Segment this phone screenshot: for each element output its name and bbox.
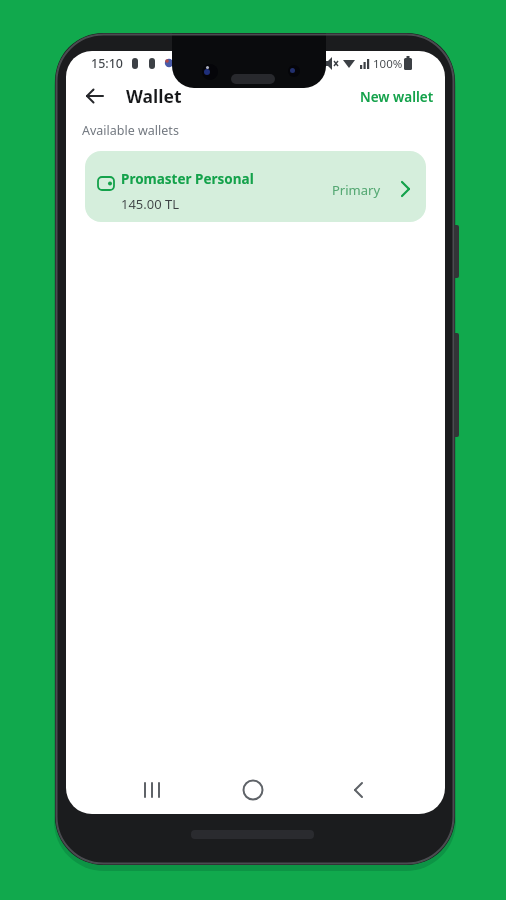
staticText: 15:10 <box>91 55 124 72</box>
staticText: New wallet <box>360 88 434 106</box>
button[interactable]: New wallet <box>360 81 440 111</box>
button[interactable] <box>132 773 172 807</box>
button[interactable] <box>233 773 273 807</box>
staticText: Wallet <box>126 84 182 108</box>
staticText: 145.00 TL <box>121 195 180 213</box>
staticText: Promaster Personal <box>121 170 254 188</box>
staticText: Available wallets <box>82 122 179 139</box>
button[interactable] <box>75 76 115 116</box>
button[interactable] <box>338 773 378 807</box>
staticText: 100% <box>373 56 403 72</box>
button[interactable]: Promaster Personal <box>85 151 426 222</box>
staticText: Primary <box>332 181 381 199</box>
